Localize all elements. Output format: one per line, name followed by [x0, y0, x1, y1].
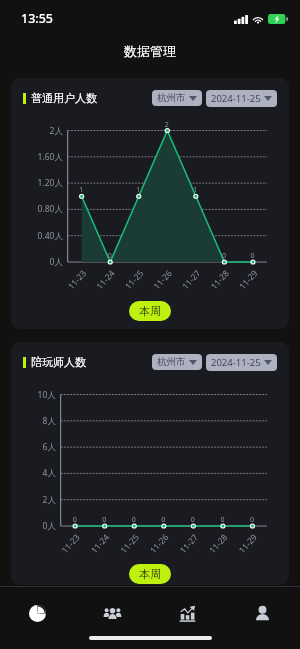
staticText: 本周	[139, 567, 161, 581]
staticText: 13:55	[21, 10, 54, 27]
button[interactable]: 2024-11-25	[206, 354, 277, 371]
button[interactable]: Profile	[225, 595, 300, 631]
button[interactable]: Statistics	[150, 595, 225, 631]
button[interactable]: 本周	[129, 564, 171, 584]
staticText: 数据管理	[124, 43, 176, 59]
button[interactable]: 本周	[129, 301, 171, 321]
other: Dashboard	[29, 605, 46, 622]
staticText: 2024-11-25	[211, 92, 261, 105]
button[interactable]: 杭州市	[152, 354, 202, 370]
staticText: 陪玩师人数	[31, 355, 86, 369]
staticText: 本周	[139, 304, 161, 318]
staticText: 2024-11-25	[211, 356, 261, 369]
button[interactable]: Users	[75, 595, 150, 631]
staticText: 杭州市	[157, 356, 186, 368]
button[interactable]: Dashboard	[0, 595, 75, 631]
button[interactable]: 杭州市	[152, 90, 202, 106]
button[interactable]: 2024-11-25	[206, 90, 277, 107]
staticText: 普通用户人数	[31, 91, 97, 105]
staticText: 杭州市	[157, 92, 186, 104]
